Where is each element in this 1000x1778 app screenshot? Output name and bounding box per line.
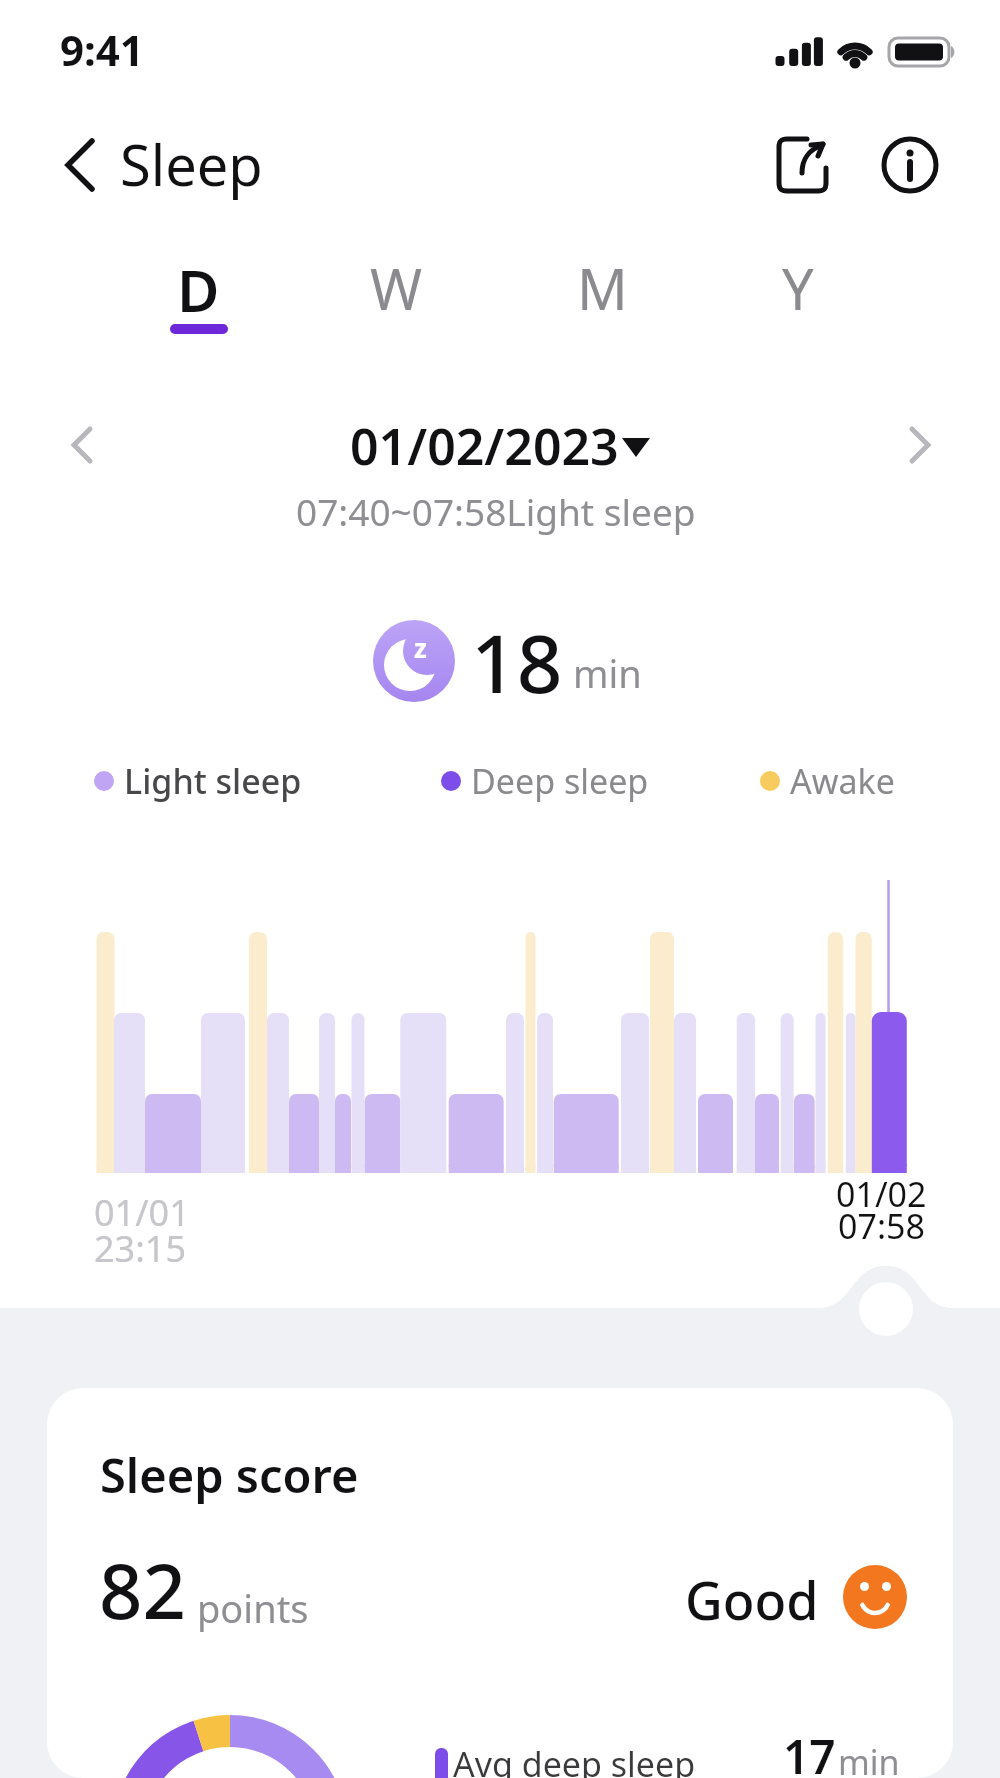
staticText: M bbox=[577, 250, 628, 326]
staticText: points bbox=[197, 1582, 309, 1634]
button[interactable] bbox=[52, 415, 112, 475]
staticText: W bbox=[370, 250, 423, 326]
button[interactable] bbox=[50, 130, 116, 200]
button[interactable]: D bbox=[143, 245, 253, 345]
staticText: 23:15 bbox=[94, 1224, 187, 1273]
button[interactable] bbox=[890, 415, 950, 475]
staticText: Light sleep bbox=[124, 758, 302, 804]
staticText: min bbox=[838, 1739, 900, 1778]
staticText: 17 bbox=[783, 1725, 836, 1778]
staticText: Sleep score bbox=[100, 1443, 359, 1507]
staticText: Y bbox=[782, 250, 814, 326]
staticText: 82 bbox=[99, 1538, 186, 1642]
button[interactable]: Sleep score bbox=[47, 1388, 953, 1778]
staticText: 18 bbox=[471, 607, 563, 716]
staticText: Deep sleep bbox=[471, 758, 649, 804]
staticText: D bbox=[177, 250, 220, 329]
staticText: Good bbox=[685, 1564, 819, 1635]
button[interactable] bbox=[878, 133, 942, 197]
staticText: min bbox=[573, 647, 642, 699]
staticText: 01/02/2023 bbox=[350, 412, 619, 480]
staticText: 01/01 bbox=[94, 1188, 190, 1237]
button[interactable] bbox=[340, 412, 670, 476]
staticText: Awake bbox=[790, 758, 895, 804]
button[interactable]: Y bbox=[743, 245, 853, 345]
button[interactable] bbox=[765, 125, 845, 205]
button[interactable]: M bbox=[547, 245, 657, 345]
button[interactable]: W bbox=[341, 245, 451, 345]
staticText: 01/02 bbox=[836, 1171, 927, 1217]
staticText: z bbox=[414, 630, 427, 665]
staticText: Avg deep sleep bbox=[453, 1741, 696, 1778]
staticText: 9:41 bbox=[60, 21, 144, 78]
staticText: 07:40~07:58Light sleep bbox=[296, 486, 696, 536]
staticText: 07:58 bbox=[838, 1203, 925, 1249]
staticText: Sleep bbox=[120, 126, 263, 202]
